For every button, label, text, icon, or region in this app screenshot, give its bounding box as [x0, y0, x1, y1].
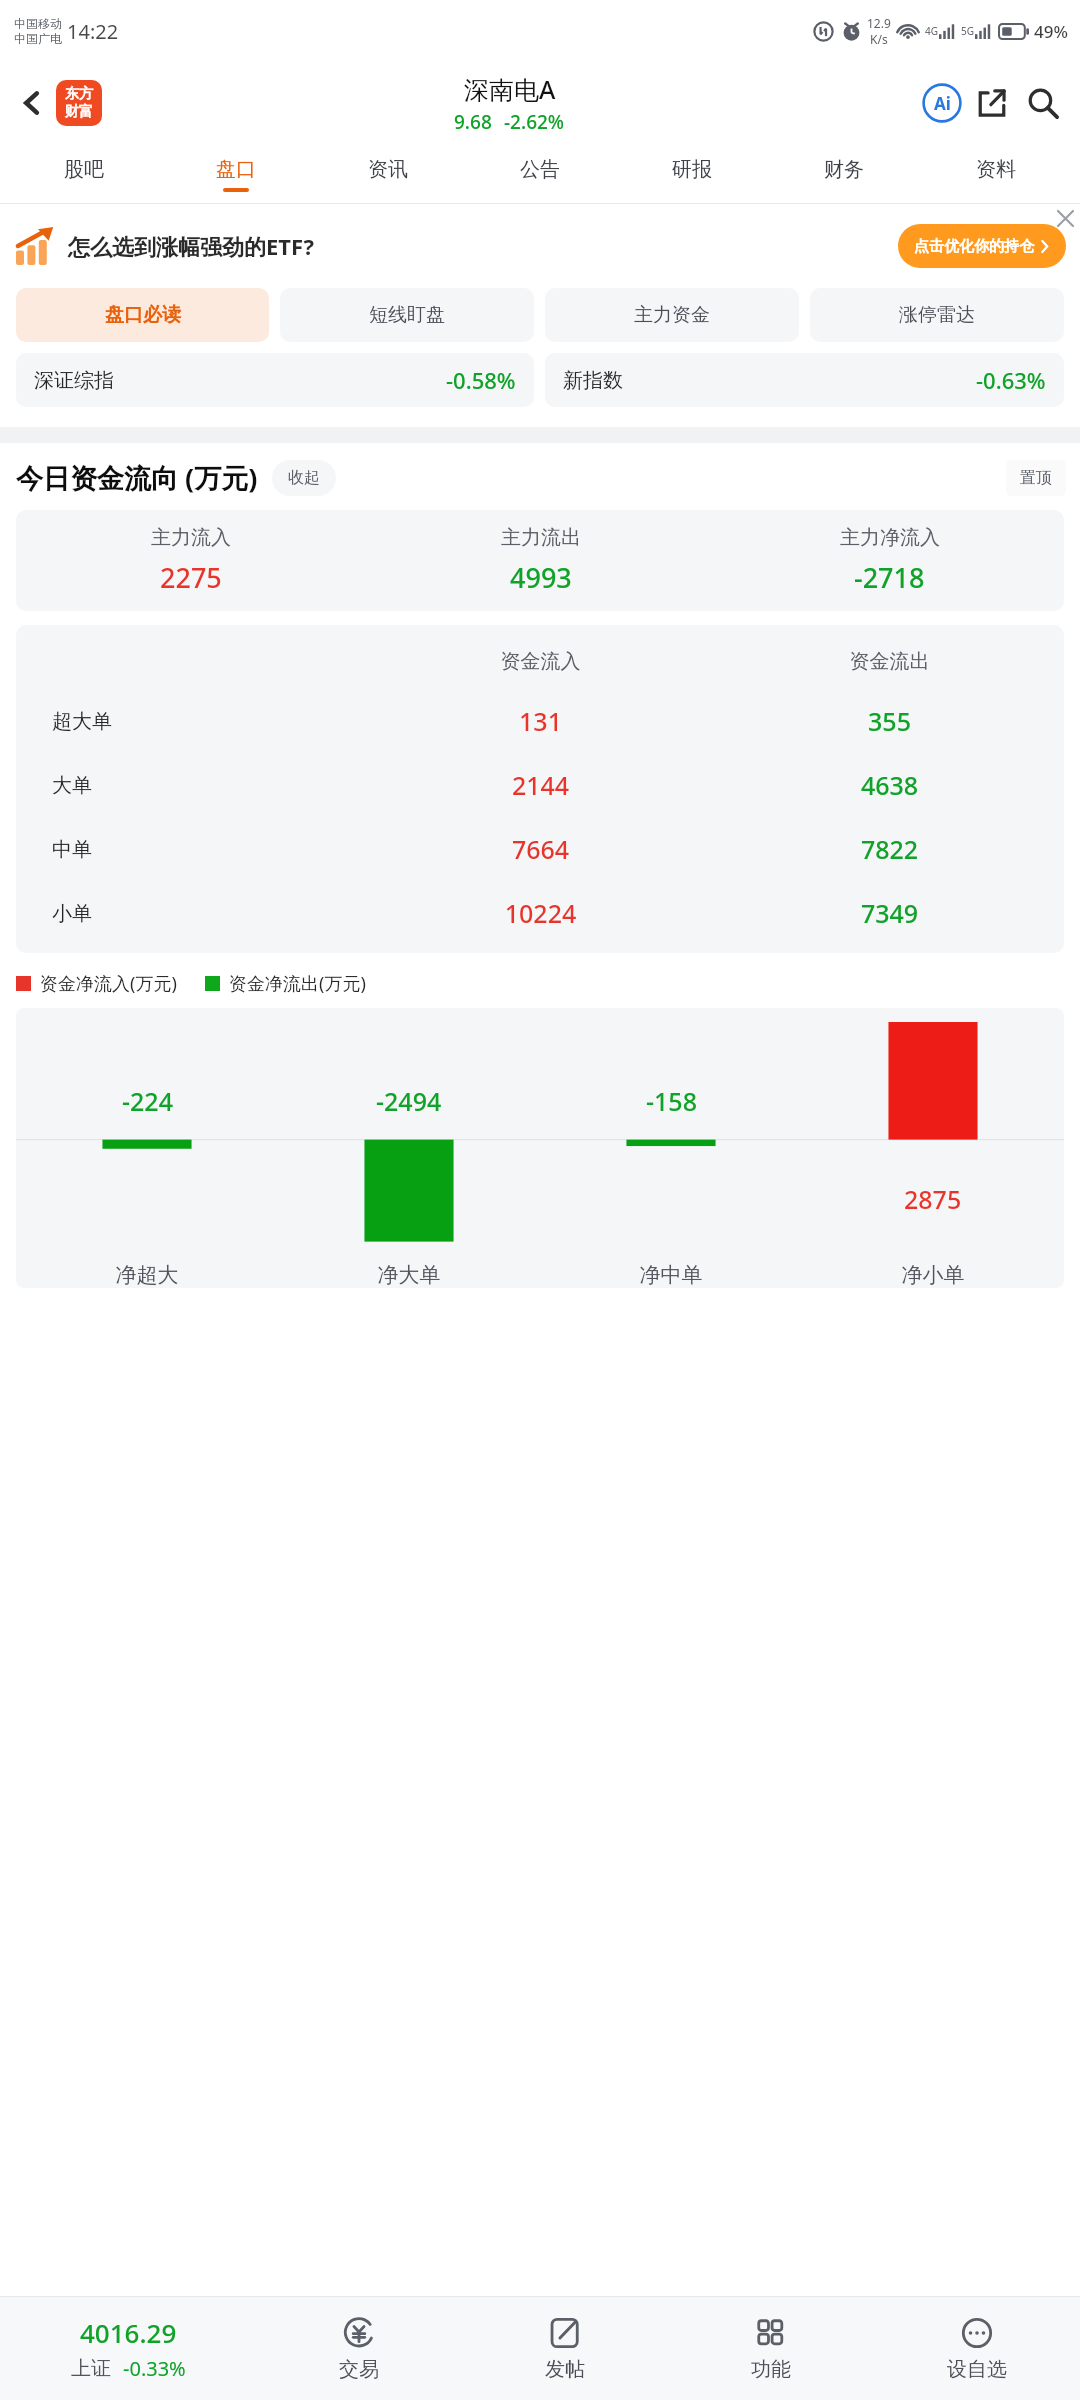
staticText: 设自选	[947, 2357, 1007, 2382]
staticText: 盘口	[216, 157, 256, 182]
staticText: 点击优化你的持仓	[914, 237, 1034, 256]
staticText: -2718	[854, 559, 925, 596]
button[interactable]: 股吧	[8, 144, 160, 204]
staticText: 7822	[715, 832, 1064, 866]
button[interactable]: Search	[1018, 78, 1068, 128]
staticText: 4993	[510, 559, 572, 596]
staticText: 131	[366, 704, 715, 738]
staticText: 功能	[751, 2357, 791, 2382]
button[interactable]: 研报	[616, 144, 768, 204]
button[interactable]: 发帖	[462, 2296, 668, 2400]
staticText: 12.9	[867, 15, 891, 31]
staticText: 10224	[366, 896, 715, 930]
button[interactable]: 主力资金	[545, 288, 799, 342]
staticText: 资讯	[368, 157, 408, 182]
staticText: Ai	[934, 92, 951, 115]
staticText: 49%	[1034, 20, 1068, 43]
staticText: -224	[122, 1084, 173, 1118]
staticText: 中国移动	[14, 16, 62, 31]
staticText: 超大单	[52, 709, 366, 734]
button[interactable]: 交易	[256, 2296, 462, 2400]
staticText: 研报	[672, 157, 712, 182]
staticText: 主力流出	[501, 525, 581, 550]
staticText: 资金净流入(万元)	[40, 971, 177, 996]
button[interactable]: 收起	[272, 460, 336, 496]
staticText: 2144	[366, 768, 715, 802]
button[interactable]: 怎么选到涨幅强劲的ETF?	[16, 204, 1066, 288]
staticText: 怎么选到涨幅强劲的ETF?	[68, 231, 315, 261]
staticText: 净大单	[278, 1262, 540, 1288]
staticText: 5G	[961, 24, 974, 38]
button[interactable]: 点击优化你的持仓	[898, 224, 1066, 268]
staticText: -158	[646, 1084, 697, 1118]
button[interactable]: 东方财富	[56, 80, 102, 126]
staticText: 净超大	[16, 1262, 278, 1288]
button[interactable]: 设自选	[874, 2296, 1080, 2400]
staticText: 资金流入	[366, 649, 715, 674]
staticText: 新指数	[563, 368, 623, 393]
staticText: 今日资金流向 (万元)	[16, 459, 258, 496]
staticText: 净中单	[540, 1262, 802, 1288]
staticText: 14:22	[67, 18, 119, 45]
staticText: 净小单	[802, 1262, 1064, 1288]
staticText: 主力净流入	[840, 525, 940, 550]
button[interactable]: Back	[10, 81, 54, 125]
button[interactable]: 新指数	[545, 353, 1064, 407]
staticText: 355	[715, 704, 1064, 738]
staticText: 短线盯盘	[369, 303, 445, 327]
staticText: -0.63%	[976, 365, 1046, 395]
staticText: 7664	[366, 832, 715, 866]
staticText: 东方	[65, 85, 93, 103]
button[interactable]: 盘口必读	[16, 288, 269, 342]
staticText: 财务	[824, 157, 864, 182]
staticText: 4016.29	[80, 2315, 177, 2350]
staticText: 中单	[52, 837, 366, 862]
staticText: 财富	[65, 103, 93, 121]
staticText: 主力流入	[151, 525, 231, 550]
staticText: K/s	[870, 31, 888, 47]
staticText: 深南电A	[464, 72, 556, 106]
button[interactable]: 短线盯盘	[280, 288, 534, 342]
button[interactable]: 资料	[920, 144, 1072, 204]
staticText: -0.58%	[446, 365, 516, 395]
button[interactable]: 功能	[668, 2296, 874, 2400]
staticText: 4G	[925, 24, 938, 38]
staticText: 9.68	[454, 109, 492, 135]
staticText: 收起	[288, 468, 320, 488]
staticText: 2275	[160, 559, 222, 596]
staticText: 上证	[71, 2356, 111, 2381]
staticText: 小单	[52, 901, 366, 926]
staticText: 交易	[339, 2357, 379, 2382]
button[interactable]: 盘口	[160, 144, 312, 204]
button[interactable]: 深证综指	[16, 353, 534, 407]
staticText: -2494	[376, 1084, 442, 1118]
staticText: 深证综指	[34, 368, 114, 393]
staticText: -2.62%	[504, 109, 565, 135]
staticText: 资金流出	[715, 649, 1064, 674]
staticText: 盘口必读	[105, 303, 181, 327]
staticText: 涨停雷达	[899, 303, 975, 327]
button[interactable]: 置顶	[1006, 460, 1066, 496]
staticText: 大单	[52, 773, 366, 798]
staticText: 发帖	[545, 2357, 585, 2382]
staticText: 资料	[976, 157, 1016, 182]
staticText: 主力资金	[634, 303, 710, 327]
button[interactable]: 资讯	[312, 144, 464, 204]
button[interactable]: AI助手	[918, 79, 966, 127]
staticText: 公告	[520, 157, 560, 182]
staticText: 4638	[715, 768, 1064, 802]
button[interactable]: Share	[968, 79, 1016, 127]
staticText: 资金净流出(万元)	[229, 971, 366, 996]
staticText: 7349	[715, 896, 1064, 930]
staticText: 置顶	[1020, 468, 1052, 488]
button[interactable]: 财务	[768, 144, 920, 204]
staticText: 中国广电	[14, 31, 62, 46]
button[interactable]: Close	[1052, 205, 1078, 231]
button[interactable]: 公告	[464, 144, 616, 204]
staticText: -0.33%	[123, 2355, 186, 2382]
button[interactable]: 4016.29	[0, 2296, 256, 2400]
staticText: 2875	[904, 1182, 962, 1216]
staticText: 股吧	[64, 157, 104, 182]
button[interactable]: 涨停雷达	[810, 288, 1064, 342]
